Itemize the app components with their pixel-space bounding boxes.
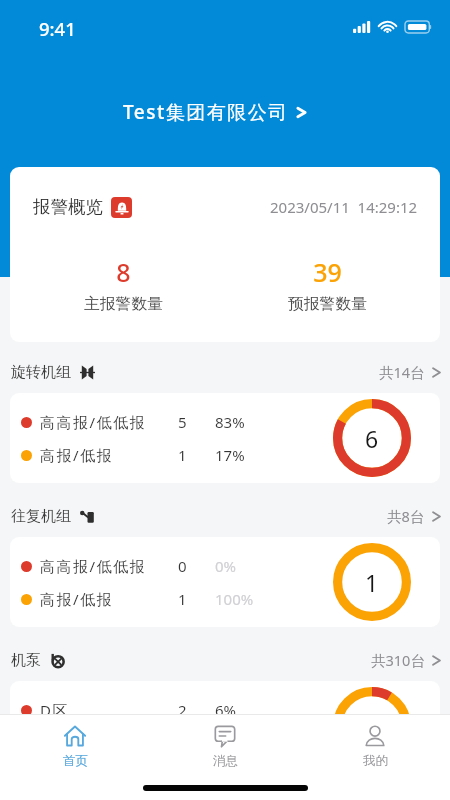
staticText: 2 [178, 700, 187, 720]
staticText: 预报警数量 [288, 294, 367, 314]
staticText: Test集团有限公司 [123, 99, 289, 125]
staticText: 高报/低报 [40, 445, 114, 465]
button[interactable]: 我的 [300, 715, 450, 779]
button[interactable]: 首页 [0, 715, 150, 779]
button[interactable]: 高高报/低低报 [10, 537, 440, 627]
staticText: 主报警数量 [84, 294, 163, 314]
staticText: 17% [215, 445, 245, 465]
staticText: 20% [215, 733, 245, 753]
staticText: 往复机组 [11, 507, 71, 526]
button[interactable]: Test集团有限公司 [123, 99, 308, 125]
button[interactable]: 高高报/低低报 [10, 393, 440, 483]
staticText: 0% [215, 556, 237, 576]
button[interactable]: D区 [10, 681, 440, 771]
staticText: 6 [365, 423, 379, 454]
staticText: 8 [365, 711, 379, 742]
staticText: 8 [116, 255, 131, 289]
staticText: 0 [178, 556, 187, 576]
staticText: 高报/低报 [40, 589, 114, 609]
staticText: 2023/05/11 14:29:12 [270, 197, 418, 217]
staticText: 83% [215, 412, 245, 432]
staticText: 首页 [63, 753, 88, 769]
button[interactable]: 消息 [150, 715, 300, 779]
staticText: 39 [313, 255, 342, 289]
staticText: 机泵 [11, 651, 41, 670]
staticText: 共14台 [379, 362, 425, 382]
staticText: 1 [365, 567, 379, 598]
staticText: 9:41 [39, 16, 76, 41]
staticText: 高高报/低低报 [40, 412, 147, 432]
staticText: 共8台 [387, 506, 425, 526]
staticText: 高高报/低低报 [40, 556, 147, 576]
staticText: D区 [40, 700, 69, 720]
staticText: 我的 [363, 753, 388, 769]
staticText: 1 [178, 589, 187, 609]
staticText: 消息 [213, 753, 238, 769]
staticText: 5 [178, 412, 187, 432]
staticText: 100% [215, 589, 254, 609]
button[interactable]: 共14台 [379, 362, 441, 382]
button[interactable]: 共310台 [371, 650, 441, 670]
staticText: 6% [215, 700, 237, 720]
staticText: 报警概览 [33, 196, 103, 218]
staticText: 共310台 [371, 650, 425, 670]
staticText: A区 [40, 733, 68, 753]
button[interactable]: 共8台 [387, 506, 441, 526]
staticText: 旋转机组 [11, 363, 71, 382]
staticText: 1 [178, 445, 187, 465]
